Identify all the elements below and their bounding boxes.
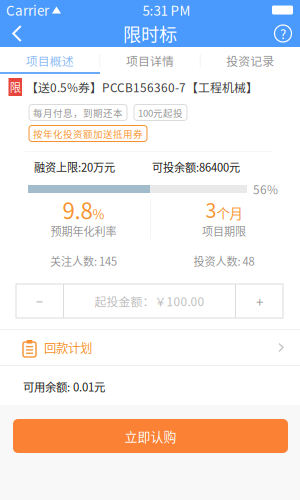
button[interactable]: Increase amount	[236, 284, 283, 318]
staticText: −	[36, 292, 43, 310]
staticText: 可投余额:86400元	[152, 159, 240, 175]
staticText: 每月付息，到期还本	[33, 106, 123, 119]
staticText: ?	[280, 24, 286, 43]
staticText: 100元起投	[138, 106, 183, 119]
staticText: 投资记录	[226, 52, 274, 69]
staticText: 可用余额: 0.01元	[23, 378, 105, 395]
staticText: 项目详情	[126, 52, 174, 69]
staticText: 3个月	[205, 196, 242, 223]
staticText: 56%	[253, 180, 278, 198]
button[interactable]: Decrease amount	[16, 284, 63, 318]
staticText: 5:31 PM	[142, 0, 190, 20]
staticText: +	[256, 291, 263, 311]
staticText: 回款计划	[44, 338, 92, 356]
staticText: 限时标	[123, 20, 177, 47]
button[interactable]: 回款计划	[0, 330, 300, 365]
button[interactable]: 项目概述	[0, 47, 99, 74]
staticText: 融资上限:20万元	[34, 159, 115, 175]
button[interactable]: 项目详情	[100, 47, 200, 74]
staticText: 9.8%	[62, 194, 104, 225]
button[interactable]: 立即认购	[13, 419, 288, 453]
staticText: 项目概述	[26, 52, 74, 69]
staticText: 限	[10, 79, 21, 95]
staticText: 按年化投资额加送抵用券	[33, 127, 143, 140]
button[interactable]: Help	[266, 20, 300, 47]
staticText: 预期年化利率	[50, 223, 116, 239]
staticText: 起投金额：￥100.00	[94, 292, 204, 310]
staticText: 立即认购	[124, 427, 176, 445]
button[interactable]: 投资记录	[201, 47, 300, 74]
staticText: 项目期限	[202, 223, 246, 239]
staticText: 关注人数: 145	[50, 253, 117, 269]
staticText: Carrier	[6, 0, 49, 20]
button[interactable]: Back	[0, 20, 34, 47]
staticText: 【送0.5%券】PCCB156360-7【工程机械】	[26, 78, 258, 96]
staticText: 投资人数: 48	[193, 253, 254, 269]
